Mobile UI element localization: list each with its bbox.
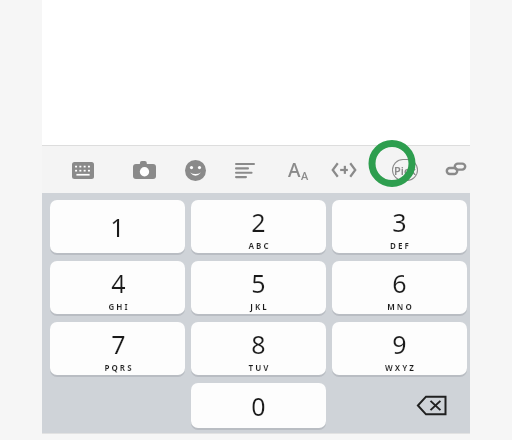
button[interactable]: Camera xyxy=(131,157,157,183)
staticText: 6 xyxy=(392,266,407,300)
button[interactable]: Backspace xyxy=(364,383,499,428)
button[interactable]: 9 xyxy=(332,322,467,375)
staticText: 2 xyxy=(251,205,266,239)
staticText: M N O xyxy=(387,301,412,312)
staticText: 3 xyxy=(392,205,407,239)
other: Highlight Pick xyxy=(362,140,422,187)
button[interactable]: Insert code xyxy=(331,157,357,183)
staticText: 0 xyxy=(251,389,266,423)
staticText: 9 xyxy=(392,327,407,361)
staticText: A xyxy=(288,157,301,183)
button[interactable]: 3 xyxy=(332,200,467,253)
button[interactable]: Emoji xyxy=(182,157,208,183)
staticText: 5 xyxy=(251,266,266,300)
staticText: 4 xyxy=(111,266,126,300)
button[interactable]: Link xyxy=(443,157,469,183)
staticText: J K L xyxy=(250,301,267,312)
staticText: W X Y Z xyxy=(385,362,414,373)
button[interactable]: Text size xyxy=(285,157,311,183)
button[interactable]: 1 xyxy=(50,200,185,253)
staticText: D E F xyxy=(390,240,409,251)
button[interactable]: 5 xyxy=(191,261,326,314)
button[interactable]: 7 xyxy=(50,322,185,375)
button[interactable]: 4 xyxy=(50,261,185,314)
button[interactable]: 6 xyxy=(332,261,467,314)
staticText: A xyxy=(301,168,309,183)
button[interactable]: Format list xyxy=(232,157,258,183)
button[interactable]: 2 xyxy=(191,200,326,253)
staticText: P Q R S xyxy=(104,362,132,373)
staticText: T U V xyxy=(248,362,269,373)
button[interactable]: Keyboard xyxy=(70,157,96,183)
staticText: G H I xyxy=(108,301,128,312)
button[interactable]: Pick xyxy=(392,157,418,183)
button[interactable]: 8 xyxy=(191,322,326,375)
staticText: 8 xyxy=(251,327,266,361)
staticText: 7 xyxy=(111,327,126,361)
staticText: A B C xyxy=(248,240,269,251)
button[interactable]: 0 xyxy=(191,383,326,428)
staticText: Pick xyxy=(394,163,416,178)
staticText: 1 xyxy=(110,210,125,244)
